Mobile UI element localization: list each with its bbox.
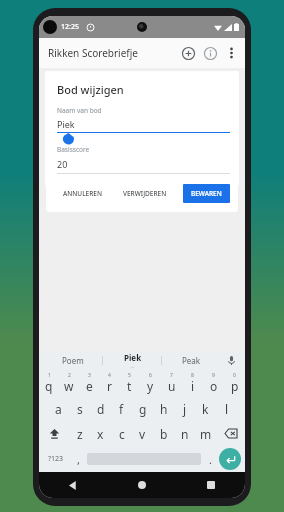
staticText: Piek xyxy=(124,352,142,363)
staticText: Twaalf alleen xyxy=(68,90,178,100)
button[interactable]: More options xyxy=(221,43,241,63)
staticText: g xyxy=(139,401,147,417)
staticText: n xyxy=(181,426,189,442)
staticText: l xyxy=(225,401,229,417)
button[interactable]: Back xyxy=(39,472,107,498)
staticText: ANNULEREN xyxy=(63,189,103,198)
button[interactable]: 8 xyxy=(182,370,203,396)
staticText: VERWIJDEREN xyxy=(123,189,167,198)
button[interactable]: A13 xyxy=(45,116,239,130)
button[interactable]: 9 xyxy=(203,370,224,396)
staticText: e xyxy=(86,378,93,394)
button[interactable]: ANNULEREN xyxy=(57,185,109,202)
button[interactable]: l xyxy=(216,396,237,421)
button[interactable]: ?123 xyxy=(43,446,69,472)
button[interactable]: d xyxy=(90,396,111,421)
button[interactable]: x xyxy=(90,421,111,446)
button[interactable]: , xyxy=(69,446,87,472)
button[interactable]: 5 xyxy=(119,370,140,396)
button[interactable]: j xyxy=(174,396,195,421)
staticText: p xyxy=(231,378,239,394)
button[interactable]: Add xyxy=(177,42,199,64)
staticText: t xyxy=(127,378,132,394)
staticText: 5 xyxy=(54,148,58,155)
staticText: T8 xyxy=(52,162,59,169)
button[interactable]: Voice input xyxy=(221,351,241,370)
staticText: Piek xyxy=(57,118,75,130)
button[interactable]: 5 xyxy=(45,144,239,158)
staticText: f xyxy=(119,401,124,417)
staticText: v xyxy=(139,426,146,442)
button[interactable]: b xyxy=(153,421,174,446)
staticText: A12 xyxy=(50,92,61,99)
button[interactable]: f xyxy=(111,396,132,421)
button[interactable]: Shift xyxy=(39,421,69,446)
staticText: h xyxy=(160,401,168,417)
staticText: 6 xyxy=(149,372,152,379)
staticText: r xyxy=(107,378,112,394)
staticText: 5 xyxy=(128,372,131,379)
button[interactable]: BEWAREN xyxy=(183,184,230,203)
staticText: y xyxy=(147,378,154,394)
button[interactable]: S xyxy=(45,130,239,144)
button[interactable]: Peak xyxy=(162,351,221,370)
button[interactable]: M xyxy=(45,102,239,116)
staticText: Dertien alleen xyxy=(68,118,178,128)
button[interactable]: 3 xyxy=(79,370,99,396)
button[interactable]: s xyxy=(69,396,90,421)
button[interactable]: A12 xyxy=(45,88,239,102)
button[interactable]: Enter xyxy=(219,448,241,470)
button[interactable]: . xyxy=(201,446,219,472)
button[interactable]: Backspace xyxy=(216,421,245,446)
button[interactable]: h xyxy=(153,396,174,421)
button[interactable]: VERWIJDEREN xyxy=(117,185,173,202)
staticText: 1 xyxy=(48,372,51,379)
staticText: c xyxy=(119,426,125,442)
button[interactable]: T8 xyxy=(45,158,239,172)
staticText: q xyxy=(45,378,53,394)
button[interactable]: 4 xyxy=(99,370,119,396)
button[interactable]: c xyxy=(111,421,132,446)
button[interactable]: Info xyxy=(199,42,221,64)
staticText: Naam van bod xyxy=(57,106,102,115)
staticText: A13 xyxy=(50,120,61,127)
button[interactable]: m xyxy=(195,421,216,446)
staticText: x xyxy=(97,426,104,442)
staticText: j xyxy=(183,401,187,417)
button[interactable]: g xyxy=(132,396,153,421)
button[interactable]: Poem xyxy=(43,351,103,370)
button[interactable]: NF xyxy=(45,172,239,186)
button[interactable]: 7 xyxy=(161,370,182,396)
button[interactable]: 2 xyxy=(59,370,79,396)
staticText: 8 xyxy=(191,372,194,379)
button[interactable]: Home xyxy=(107,472,176,498)
button[interactable]: Recents xyxy=(176,472,245,498)
staticText: BEWAREN xyxy=(191,189,222,198)
button[interactable]: 6 xyxy=(140,370,161,396)
button[interactable]: 0 xyxy=(224,370,245,396)
button[interactable]: Piek xyxy=(103,351,162,370)
staticText: m xyxy=(200,426,212,442)
button[interactable]: n xyxy=(174,421,195,446)
staticText: Poem xyxy=(62,355,84,366)
button[interactable]: P xyxy=(45,74,239,88)
button[interactable]: a xyxy=(47,396,69,421)
button[interactable]: 1 xyxy=(39,370,59,396)
button[interactable]: v xyxy=(132,421,153,446)
button[interactable]: k xyxy=(195,396,216,421)
staticText: 4 xyxy=(108,372,111,379)
button[interactable]: z xyxy=(69,421,90,446)
staticText: . xyxy=(209,452,212,467)
staticText: 15 xyxy=(178,132,187,142)
staticText: 12:25 xyxy=(61,22,79,32)
